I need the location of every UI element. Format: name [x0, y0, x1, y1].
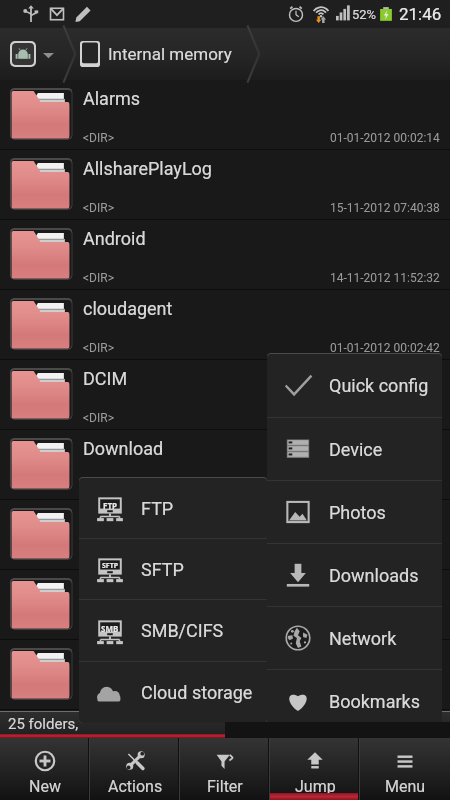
- button[interactable]: AllsharePlayLog: [0, 150, 450, 220]
- staticText: SMB: [101, 623, 119, 634]
- staticText: <DIR>: [83, 131, 114, 145]
- button[interactable]: Download: [0, 430, 450, 500]
- button[interactable]: Android: [0, 220, 450, 290]
- button[interactable]: Quick config: [267, 354, 442, 417]
- button[interactable]: SMB: [79, 600, 267, 661]
- staticText: 01-01-2012 00:02:14: [330, 131, 440, 145]
- button[interactable]: cloudagent: [0, 290, 450, 360]
- staticText: 21:46: [399, 4, 442, 24]
- staticText: Internal memory: [108, 44, 232, 64]
- button[interactable]: [0, 500, 450, 570]
- staticText: Cloud storage: [141, 682, 253, 703]
- button[interactable]: [0, 640, 450, 710]
- button[interactable]: Home: [4, 28, 60, 80]
- button[interactable]: Device: [267, 418, 442, 480]
- staticText: <DIR>: [83, 411, 114, 425]
- staticText: New: [29, 777, 61, 796]
- staticText: 14-11-2012 11:52:32: [330, 271, 440, 285]
- button[interactable]: Cloud storage: [79, 662, 267, 723]
- button[interactable]: Downloads: [267, 544, 442, 606]
- button[interactable]: Actions: [90, 738, 180, 800]
- staticText: Photos: [329, 502, 386, 523]
- staticText: FTP: [103, 500, 117, 511]
- staticText: Android: [83, 228, 146, 249]
- button[interactable]: FTP: [79, 478, 267, 538]
- staticText: AllsharePlayLog: [83, 158, 212, 179]
- staticText: cloudagent: [83, 298, 173, 319]
- button[interactable]: [0, 570, 450, 640]
- staticText: Downloads: [329, 565, 419, 586]
- button[interactable]: Alarms: [0, 80, 450, 150]
- button[interactable]: DCIM: [0, 360, 450, 430]
- staticText: 25 folders,: [8, 715, 79, 733]
- staticText: <DIR>: [83, 341, 114, 355]
- button[interactable]: Jump: [270, 738, 360, 800]
- staticText: Download: [83, 438, 164, 459]
- button[interactable]: Photos: [267, 481, 442, 543]
- button[interactable]: Network: [267, 607, 442, 669]
- button[interactable]: Internal memory: [76, 28, 246, 80]
- button[interactable]: Menu: [360, 738, 450, 800]
- button[interactable]: [0, 710, 450, 780]
- staticText: 15-11-2012 07:40:38: [330, 201, 440, 215]
- staticText: SMB/CIFS: [141, 620, 224, 641]
- staticText: SFTP: [102, 561, 119, 571]
- staticText: Quick config: [329, 375, 429, 396]
- staticText: Actions: [108, 777, 163, 796]
- staticText: Device: [329, 439, 383, 460]
- button[interactable]: New: [0, 738, 90, 800]
- staticText: Alarms: [83, 88, 141, 109]
- button[interactable]: SFTP: [79, 539, 267, 599]
- staticText: Bookmarks: [329, 691, 420, 712]
- staticText: Menu: [385, 777, 426, 796]
- staticText: <DIR>: [83, 271, 114, 285]
- button[interactable]: Filter: [180, 738, 270, 800]
- staticText: Jump: [295, 777, 336, 796]
- staticText: SFTP: [141, 559, 184, 580]
- staticText: FTP: [141, 498, 174, 519]
- staticText: 01-01-2012 00:02:42: [330, 341, 440, 355]
- button[interactable]: Bookmarks: [267, 670, 442, 732]
- staticText: <DIR>: [83, 201, 114, 215]
- staticText: Network: [329, 628, 397, 649]
- staticText: 52%: [352, 7, 377, 22]
- staticText: Filter: [207, 777, 243, 796]
- staticText: DCIM: [83, 368, 128, 389]
